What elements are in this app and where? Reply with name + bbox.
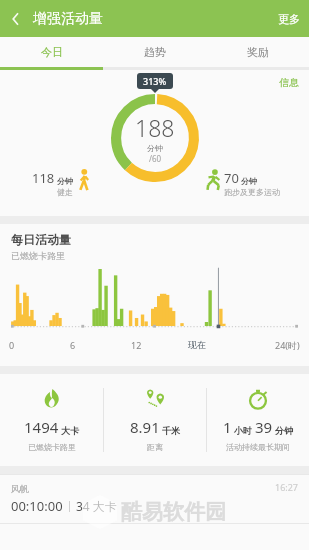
staticText: 现在	[188, 339, 206, 350]
button[interactable]: 今日	[0, 37, 103, 67]
staticText: 增强活动量	[33, 10, 103, 28]
staticText: /60	[149, 153, 162, 164]
button[interactable]: 70	[205, 169, 280, 197]
button[interactable]: 奖励	[206, 37, 309, 67]
staticText: 分钟	[147, 143, 163, 153]
staticText: 已燃烧卡路里	[28, 442, 76, 452]
button[interactable]: 更多	[278, 12, 309, 26]
staticText: 6	[70, 339, 76, 351]
staticText: 跑步及更多运动	[224, 187, 280, 197]
button[interactable]: 趋势	[103, 37, 206, 67]
staticText: 健走	[57, 187, 73, 197]
staticText: 39	[255, 417, 273, 437]
button[interactable]: Longest activity duration	[207, 374, 309, 466]
staticText: 0	[9, 339, 15, 351]
button[interactable]: 风帆	[0, 475, 309, 523]
staticText: 8.91	[130, 417, 160, 437]
staticText: 小时	[234, 425, 252, 436]
staticText: 分钟	[241, 176, 257, 186]
staticText: 16:27	[275, 481, 299, 493]
staticText: 188	[135, 112, 175, 143]
staticText: 分钟	[275, 425, 293, 436]
staticText: 12	[131, 339, 142, 351]
staticText: 已燃烧卡路里	[11, 250, 65, 261]
staticText: 大卡	[61, 425, 79, 436]
staticText: 1494	[24, 417, 59, 437]
staticText: 趋势	[144, 45, 166, 59]
staticText: 1	[223, 417, 232, 437]
staticText: 活动持续最长期间	[226, 442, 290, 452]
button[interactable]: Distance	[104, 374, 206, 466]
staticText: 千米	[162, 425, 180, 436]
staticText: 奖励	[247, 45, 269, 59]
staticText: 00:10:00	[11, 497, 63, 515]
staticText: 34 大卡	[76, 498, 117, 514]
staticText: 分钟	[57, 176, 73, 186]
button[interactable]: 118	[32, 169, 91, 197]
button[interactable]: Back	[0, 4, 30, 34]
staticText: 酷易软件园	[121, 499, 226, 525]
staticText: 24(时)	[275, 339, 300, 351]
button[interactable]: Calories burned	[0, 374, 103, 466]
button[interactable]: 信息	[279, 70, 309, 89]
staticText: 118	[32, 169, 55, 187]
staticText: 距离	[147, 442, 163, 452]
staticText: 70	[224, 169, 239, 187]
staticText: 今日	[41, 45, 63, 59]
staticText: 313%	[143, 75, 167, 87]
staticText: 每日活动量	[11, 232, 71, 247]
staticText: 风帆	[11, 483, 29, 494]
